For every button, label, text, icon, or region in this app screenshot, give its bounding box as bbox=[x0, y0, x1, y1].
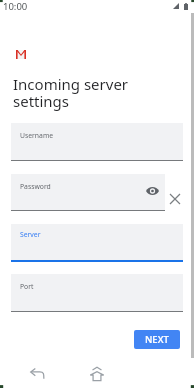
button[interactable]: Username bbox=[11, 123, 183, 161]
staticText: 10:00 bbox=[3, 0, 28, 13]
staticText: Username bbox=[20, 131, 54, 140]
button[interactable]: Password bbox=[11, 174, 165, 211]
staticText: Incoming server settings bbox=[13, 74, 129, 111]
button[interactable]: NEXT bbox=[134, 330, 180, 349]
button[interactable]: Server bbox=[11, 224, 183, 262]
staticText: Port bbox=[20, 282, 34, 291]
button[interactable]: Back bbox=[30, 368, 44, 379]
staticText: Password bbox=[20, 182, 51, 191]
button[interactable]: Home bbox=[90, 367, 104, 381]
button[interactable]: Clear bbox=[167, 191, 183, 207]
button[interactable]: Show password bbox=[143, 182, 161, 200]
staticText: Server bbox=[20, 230, 41, 239]
staticText: NEXT bbox=[145, 333, 169, 346]
button[interactable]: Port bbox=[11, 274, 183, 312]
